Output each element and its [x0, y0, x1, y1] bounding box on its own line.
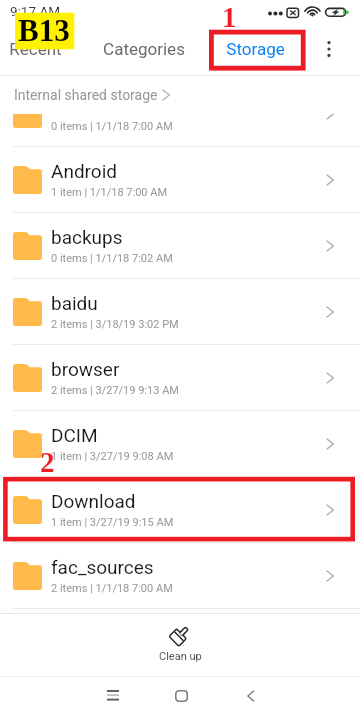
staticText: 1 item | 1/1/18 7:00 AM: [51, 186, 168, 199]
button[interactable]: Back: [219, 674, 281, 717]
staticText: Download: [51, 490, 136, 512]
button[interactable]: Android: [0, 147, 360, 212]
button[interactable]: More options: [315, 22, 342, 75]
staticText: backups: [51, 226, 123, 248]
staticText: 1 item | 3/27/19 9:08 AM: [51, 450, 174, 463]
staticText: fac_sources: [51, 556, 154, 578]
button[interactable]: Categories: [103, 22, 185, 75]
staticText: Categories: [103, 39, 185, 59]
staticText: browser: [51, 358, 120, 380]
staticText: Internal shared storage: [14, 87, 158, 103]
staticText: Recent: [9, 39, 62, 59]
staticText: 2 items | 1/1/18 7:00 AM: [51, 582, 173, 595]
staticText: 2: [40, 446, 55, 478]
button[interactable]: Recent apps: [82, 674, 144, 717]
button[interactable]: Storage: [226, 22, 285, 75]
button[interactable]: Home: [150, 674, 212, 717]
button[interactable]: Download: [0, 477, 360, 542]
button[interactable]: backups: [0, 213, 360, 278]
staticText: 9:17 AM: [10, 3, 60, 19]
staticText: Storage: [226, 39, 285, 59]
button[interactable]: DCIM: [0, 411, 360, 476]
button[interactable]: Internal shared storage: [14, 76, 360, 114]
staticText: 0 items | 1/1/18 7:00 AM: [51, 120, 173, 133]
staticText: DCIM: [51, 424, 98, 446]
staticText: 2 items | 3/18/19 3:02 PM: [51, 318, 179, 331]
staticText: Android: [51, 160, 118, 182]
staticText: 1 item | 3/27/19 9:15 AM: [51, 516, 174, 529]
button[interactable]: Recent: [9, 22, 62, 75]
button[interactable]: browser: [0, 345, 360, 410]
staticText: 2 items | 3/27/19 9:13 AM: [51, 384, 179, 397]
staticText: 1: [222, 1, 237, 33]
button[interactable]: fac_sources: [0, 543, 360, 608]
staticText: Clean up: [159, 650, 202, 663]
button[interactable]: baidu: [0, 279, 360, 344]
staticText: B13: [18, 13, 70, 47]
staticText: 0 items | 1/1/18 7:02 AM: [51, 252, 173, 265]
button[interactable]: Alarms: [0, 114, 360, 146]
staticText: baidu: [51, 292, 98, 314]
button[interactable]: Clean up: [0, 614, 360, 676]
